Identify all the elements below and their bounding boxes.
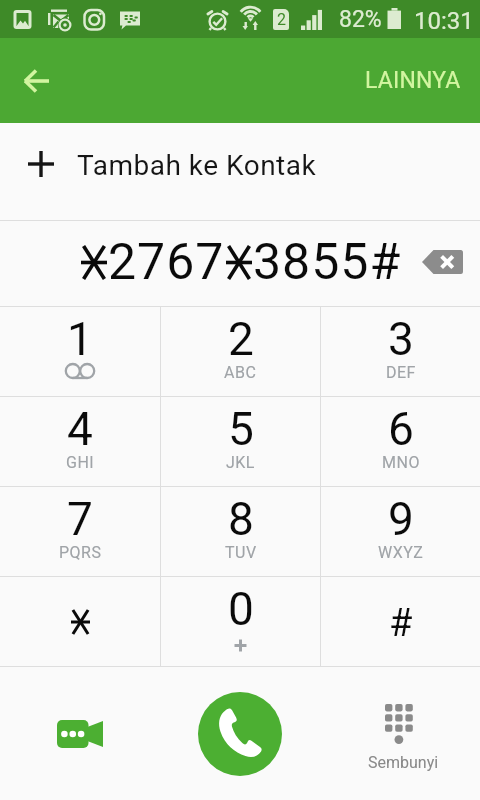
- staticText: WXYZ: [378, 543, 424, 562]
- button[interactable]: 5: [161, 397, 320, 486]
- staticText: #: [389, 601, 413, 646]
- staticText: 1: [67, 312, 93, 366]
- staticText: LAINNYA: [365, 67, 461, 94]
- staticText: 3855#: [253, 233, 402, 292]
- staticText: JKL: [226, 453, 255, 472]
- button[interactable]: 6: [321, 397, 480, 486]
- staticText: PQRS: [59, 543, 102, 562]
- button[interactable]: [0, 577, 160, 666]
- staticText: MNO: [382, 453, 420, 472]
- button[interactable]: 3: [321, 307, 480, 396]
- staticText: 10:31: [414, 7, 474, 35]
- button[interactable]: Sembunyi: [355, 695, 450, 785]
- button[interactable]: Tambah ke Kontak: [0, 123, 480, 220]
- staticText: 82%: [339, 6, 382, 33]
- button[interactable]: #: [321, 577, 480, 666]
- staticText: TUV: [225, 543, 257, 562]
- staticText: GHI: [66, 453, 95, 472]
- button[interactable]: 9: [321, 487, 480, 576]
- staticText: 0: [228, 582, 254, 636]
- button[interactable]: 4: [0, 397, 160, 486]
- staticText: DEF: [386, 363, 416, 382]
- staticText: 8: [228, 492, 254, 546]
- button[interactable]: 7: [0, 487, 160, 576]
- staticText: 6: [388, 402, 414, 456]
- staticText: 7: [67, 492, 93, 546]
- staticText: 5: [228, 402, 254, 456]
- button[interactable]: 2: [161, 307, 320, 396]
- staticText: 4: [67, 402, 93, 456]
- staticText: 2767: [108, 233, 225, 292]
- button[interactable]: LAINNYA: [346, 53, 480, 108]
- button[interactable]: Call: [198, 692, 282, 776]
- staticText: Tambah ke Kontak: [77, 149, 317, 182]
- staticText: ABC: [224, 363, 257, 382]
- staticText: Sembunyi: [368, 753, 439, 772]
- button[interactable]: Navigate up: [10, 55, 62, 107]
- button[interactable]: 0: [161, 577, 320, 666]
- button[interactable]: 1: [0, 307, 160, 396]
- button[interactable]: 8: [161, 487, 320, 576]
- button[interactable]: Backspace: [412, 236, 468, 292]
- staticText: 3: [388, 312, 414, 366]
- staticText: 2: [277, 10, 286, 29]
- staticText: 2: [228, 312, 254, 366]
- staticText: 9: [388, 492, 414, 546]
- button[interactable]: Video call: [45, 710, 115, 758]
